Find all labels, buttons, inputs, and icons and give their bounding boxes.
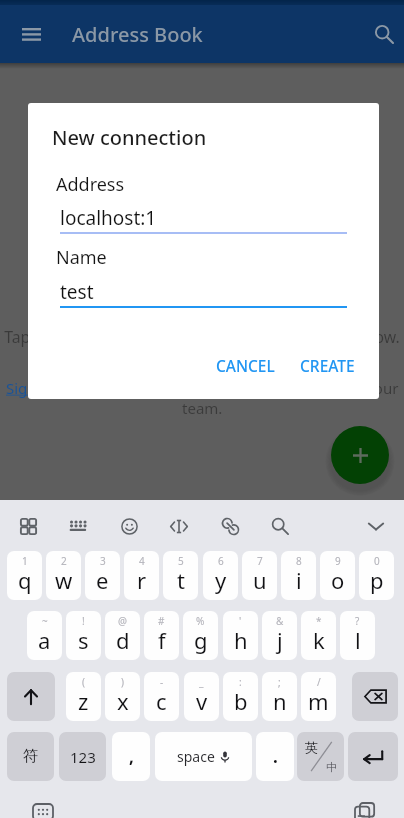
staticText: CANCEL: [216, 355, 275, 376]
button[interactable]: 9: [320, 551, 355, 600]
button[interactable]: 符: [7, 732, 54, 781]
staticText: s: [78, 625, 89, 655]
button[interactable]: CREATE: [292, 348, 363, 383]
staticText: 4: [139, 554, 145, 568]
staticText: &: [276, 614, 284, 628]
staticText: ': [239, 614, 242, 628]
staticText: 2: [61, 554, 67, 568]
staticText: 英: [305, 739, 318, 755]
button[interactable]: Emoji: [115, 512, 143, 540]
button[interactable]: Recent apps: [349, 802, 379, 818]
button[interactable]: (: [66, 672, 101, 721]
button[interactable]: -: [144, 672, 179, 721]
staticText: b: [234, 686, 248, 716]
button[interactable]: 2: [46, 551, 81, 600]
staticText: n: [273, 686, 287, 716]
button[interactable]: #: [144, 611, 179, 660]
staticText: :: [239, 675, 242, 689]
staticText: to a Google account and sync contacts wi…: [54, 378, 399, 398]
button[interactable]: ,: [112, 732, 150, 781]
button[interactable]: Hide keyboard: [362, 512, 390, 540]
button[interactable]: !: [66, 611, 101, 660]
button[interactable]: Keyboard layout: [64, 512, 92, 540]
button[interactable]: @: [105, 611, 140, 660]
staticText: _: [199, 675, 204, 689]
button[interactable]: .: [256, 732, 294, 781]
staticText: Name: [56, 245, 107, 270]
button[interactable]: Text cursor: [165, 512, 193, 540]
button[interactable]: Switch language: [297, 732, 344, 781]
button[interactable]: 5: [163, 551, 198, 600]
staticText: ,: [129, 745, 134, 768]
staticText: x: [117, 686, 129, 716]
staticText: 6: [218, 554, 224, 568]
button[interactable]: ): [105, 672, 140, 721]
staticText: .: [273, 745, 278, 768]
staticText: @: [118, 614, 127, 628]
button[interactable]: 3: [85, 551, 120, 600]
button[interactable]: /: [301, 672, 336, 721]
staticText: New connection: [52, 124, 207, 151]
staticText: i: [296, 565, 302, 595]
button[interactable]: space: [155, 732, 252, 781]
staticText: %: [196, 614, 205, 628]
staticText: -: [160, 675, 164, 689]
staticText: y: [215, 565, 227, 595]
button[interactable]: ?: [340, 611, 375, 660]
staticText: p: [370, 565, 384, 595]
staticText: !: [82, 614, 85, 628]
button[interactable]: Clipboard: [14, 512, 42, 540]
staticText: Tap the + button below to add a new conn…: [2, 326, 402, 348]
button[interactable]: 6: [203, 551, 238, 600]
staticText: team.: [182, 398, 223, 418]
staticText: 3: [100, 554, 106, 568]
staticText: localhost:1: [60, 205, 157, 231]
button[interactable]: 7: [242, 551, 277, 600]
button[interactable]: _: [184, 672, 219, 721]
staticText: ~: [42, 614, 48, 628]
staticText: CREATE: [300, 355, 355, 376]
button[interactable]: 4: [124, 551, 159, 600]
staticText: 8: [296, 554, 302, 568]
staticText: d: [116, 625, 130, 655]
staticText: g: [194, 625, 208, 655]
staticText: 9: [335, 554, 341, 568]
staticText: *: [316, 614, 322, 628]
button[interactable]: Search: [366, 16, 402, 52]
staticText: ?: [355, 614, 360, 628]
button[interactable]: *: [301, 611, 336, 660]
staticText: r: [137, 565, 147, 595]
button[interactable]: Enter: [348, 732, 398, 781]
button[interactable]: Sign in: [6, 378, 54, 398]
staticText: a: [38, 625, 51, 655]
button[interactable]: 123: [59, 732, 106, 781]
button[interactable]: CANCEL: [208, 348, 283, 383]
button[interactable]: &: [262, 611, 297, 660]
button[interactable]: Add connection: [331, 426, 389, 484]
button[interactable]: Backspace: [352, 672, 398, 721]
button[interactable]: Shift: [7, 672, 55, 721]
button[interactable]: ': [223, 611, 258, 660]
staticText: 1: [22, 554, 28, 568]
staticText: 符: [23, 747, 38, 766]
staticText: m: [308, 686, 329, 716]
button[interactable]: %: [183, 611, 218, 660]
button[interactable]: Search: [266, 512, 294, 540]
staticText: f: [158, 625, 166, 655]
button[interactable]: Theme: [216, 512, 244, 540]
staticText: #: [158, 614, 165, 628]
button[interactable]: Hide keyboard: [28, 803, 58, 818]
button[interactable]: 8: [281, 551, 316, 600]
staticText: u: [253, 565, 267, 595]
staticText: ): [121, 675, 124, 689]
button[interactable]: ~: [27, 611, 62, 660]
staticText: 5: [178, 554, 184, 568]
button[interactable]: ;: [262, 672, 297, 721]
staticText: 中: [326, 760, 337, 774]
staticText: 123: [70, 747, 96, 767]
button[interactable]: 1: [7, 551, 42, 600]
button[interactable]: 0: [359, 551, 394, 600]
button[interactable]: :: [223, 672, 258, 721]
button[interactable]: Open navigation drawer: [14, 17, 48, 51]
staticText: j: [277, 625, 283, 655]
